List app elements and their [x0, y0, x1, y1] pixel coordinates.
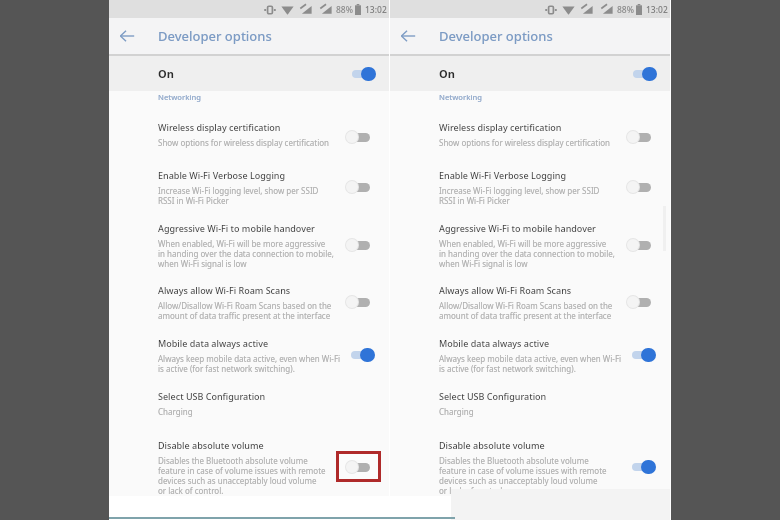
button[interactable]: Aggressive Wi-Fi to mobile handover: [336, 229, 381, 260]
staticText: Aggressive Wi-Fi to mobile handover: [439, 222, 596, 234]
staticText: Developer options: [439, 27, 553, 45]
staticText: Show options for wireless display certif…: [439, 138, 611, 148]
button[interactable]: Mobile data always active: [109, 331, 390, 384]
staticText: Always allow Wi-Fi Roam Scans: [158, 284, 291, 296]
staticText: Always keep mobile data active, even whe…: [439, 354, 622, 374]
button[interactable]: Always allow Wi-Fi Roam Scans: [109, 278, 390, 331]
staticText: Always allow Wi-Fi Roam Scans: [439, 284, 572, 296]
staticText: Charging: [439, 407, 474, 417]
button[interactable]: Aggressive Wi-Fi to mobile handover: [109, 216, 390, 279]
button[interactable]: Aggressive Wi-Fi to mobile handover: [617, 229, 662, 260]
button[interactable]: Always allow Wi-Fi Roam Scans: [390, 278, 671, 331]
button[interactable]: Wireless display certification: [617, 121, 662, 152]
button[interactable]: On: [390, 56, 671, 91]
staticText: Allow/Disallow Wi-Fi Roam Scans based on…: [439, 301, 613, 321]
staticText: Disables the Bluetooth absolute volume f…: [158, 456, 326, 496]
button[interactable]: Aggressive Wi-Fi to mobile handover: [390, 216, 671, 279]
staticText: Aggressive Wi-Fi to mobile handover: [158, 222, 315, 234]
staticText: Mobile data always active: [158, 337, 269, 349]
staticText: 88%: [336, 4, 353, 16]
staticText: Select USB Configuration: [439, 390, 547, 402]
staticText: When enabled, Wi-Fi will be more aggress…: [158, 239, 334, 269]
button[interactable]: Back: [390, 18, 426, 54]
button[interactable]: Mobile data always active: [617, 339, 662, 370]
staticText: 88%: [617, 4, 634, 16]
staticText: 13:02: [365, 4, 387, 16]
staticText: Show options for wireless display certif…: [158, 138, 330, 148]
staticText: Disables the Bluetooth absolute volume f…: [439, 456, 607, 496]
staticText: Developer options: [158, 27, 272, 45]
button[interactable]: Disable absolute volume: [109, 433, 390, 505]
button[interactable]: Back: [109, 18, 145, 54]
staticText: Increase Wi-Fi logging level, show per S…: [439, 186, 600, 206]
button[interactable]: Enable Wi-Fi Verbose Logging: [109, 163, 390, 216]
staticText: Charging: [158, 407, 193, 417]
button[interactable]: Enable Wi-Fi Verbose Logging: [617, 171, 662, 202]
staticText: Wireless display certification: [439, 121, 562, 133]
button[interactable]: Enable Wi-Fi Verbose Logging: [390, 163, 671, 216]
button[interactable]: Wireless display certification: [390, 115, 671, 163]
staticText: Always keep mobile data active, even whe…: [158, 354, 341, 374]
button[interactable]: Disable absolute volume: [390, 433, 671, 505]
staticText: Select USB Configuration: [158, 390, 266, 402]
button[interactable]: On: [109, 56, 390, 91]
staticText: Increase Wi-Fi logging level, show per S…: [158, 186, 319, 206]
button[interactable]: Wireless display certification: [109, 115, 390, 163]
staticText: Enable Wi-Fi Verbose Logging: [439, 169, 567, 181]
staticText: Disable absolute volume: [439, 439, 545, 451]
button[interactable]: Mobile data always active: [336, 339, 381, 370]
staticText: 13:02: [646, 4, 668, 16]
button[interactable]: Disable absolute volume: [617, 451, 662, 482]
button[interactable]: Disable absolute volume: [336, 451, 381, 482]
staticText: Wireless display certification: [158, 121, 281, 133]
button[interactable]: Select USB Configuration: [390, 384, 671, 432]
button[interactable]: Wireless display certification: [336, 121, 381, 152]
button[interactable]: Always allow Wi-Fi Roam Scans: [336, 286, 381, 317]
staticText: Disable absolute volume: [158, 439, 264, 451]
staticText: On: [158, 66, 174, 81]
button[interactable]: Mobile data always active: [390, 331, 671, 384]
staticText: Enable Wi-Fi Verbose Logging: [158, 169, 286, 181]
staticText: On: [439, 66, 455, 81]
staticText: Networking: [158, 92, 201, 102]
button[interactable]: Select USB Configuration: [109, 384, 390, 432]
staticText: Mobile data always active: [439, 337, 550, 349]
button[interactable]: Enable Wi-Fi Verbose Logging: [336, 171, 381, 202]
staticText: Allow/Disallow Wi-Fi Roam Scans based on…: [158, 301, 332, 321]
staticText: When enabled, Wi-Fi will be more aggress…: [439, 239, 615, 269]
button[interactable]: Always allow Wi-Fi Roam Scans: [617, 286, 662, 317]
staticText: Networking: [439, 92, 482, 102]
